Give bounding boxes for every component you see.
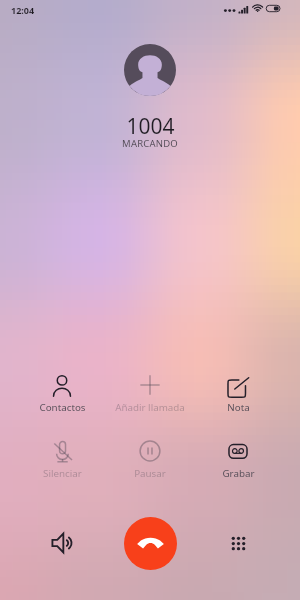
- button[interactable]: End call: [124, 517, 177, 570]
- button[interactable]: Silenciar: [18, 440, 106, 480]
- staticText: Silenciar: [43, 467, 82, 480]
- staticText: Grabar: [222, 467, 255, 480]
- staticText: Nota: [227, 401, 250, 414]
- button[interactable]: Nota: [194, 374, 282, 414]
- staticText: MARCANDO: [122, 137, 178, 150]
- staticText: Contactos: [39, 401, 86, 414]
- button[interactable]: Speaker: [18, 516, 106, 570]
- button[interactable]: Keypad: [194, 516, 282, 570]
- button[interactable]: Grabar: [194, 440, 282, 480]
- button[interactable]: Añadir llamada: [106, 374, 194, 414]
- button[interactable]: Contactos: [18, 374, 106, 414]
- staticText: 1004: [126, 112, 175, 141]
- staticText: Pausar: [134, 467, 166, 480]
- staticText: Añadir llamada: [115, 401, 185, 414]
- button[interactable]: Pausar: [106, 440, 194, 480]
- staticText: 12:04: [11, 4, 35, 16]
